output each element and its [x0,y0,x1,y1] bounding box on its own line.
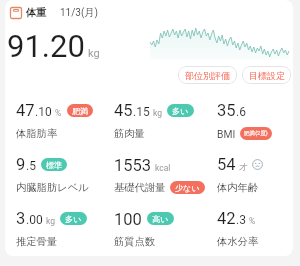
staticText: 筋肉量 [114,127,145,140]
button[interactable]: 47 [16,102,118,140]
staticText: 多い [172,106,189,116]
staticText: kg [46,216,55,226]
staticText: 目標設定 [249,70,285,81]
staticText: kg [88,47,100,60]
staticText: 体重 [26,6,47,19]
staticText: 筋質点数 [114,235,156,248]
staticText: BMI [217,128,236,140]
staticText: % [249,216,256,226]
staticText: kcal [155,163,171,173]
staticText: 肥満(2度) [244,130,268,137]
button[interactable]: 100 [114,210,218,248]
other: Weight scale [10,7,22,19]
staticText: 9 [16,155,26,171]
staticText: .5 [26,159,36,173]
staticText: 47 [16,101,35,117]
staticText: 11/3(月) [60,6,98,19]
staticText: 35 [217,101,236,117]
staticText: 体脂肪率 [16,127,58,140]
button[interactable]: 42 [217,210,293,248]
staticText: 少ない [175,183,200,193]
staticText: 100 [114,210,142,226]
staticText: 基礎代謝量 [114,181,166,194]
staticText: 内臓脂肪レベル [16,181,89,194]
button[interactable]: 45 [114,102,218,140]
staticText: .10 [35,105,52,119]
button[interactable]: 9 [16,156,118,194]
button[interactable]: 1553 [114,156,218,194]
staticText: 54 [217,155,236,171]
staticText: .6 [236,105,246,119]
staticText: 体水分率 [217,235,259,248]
staticText: 45 [114,101,133,117]
button[interactable]: 部位別評価 [178,66,237,84]
staticText: 多い [65,214,82,224]
staticText: 才 [239,162,248,173]
staticText: 肥満 [72,106,88,116]
staticText: 42 [217,209,236,225]
staticText: 部位別評価 [185,70,230,81]
staticText: 標準 [46,160,62,170]
staticText: 1553 [114,156,152,172]
button[interactable]: 54 [217,156,293,194]
staticText: 91.20 [7,28,85,64]
staticText: .15 [133,105,150,119]
staticText: .3 [236,213,246,227]
staticText: .00 [26,213,43,227]
staticText: 3 [16,209,26,225]
button[interactable]: 目標設定 [242,66,291,84]
staticText: 体内年齢 [217,181,259,194]
staticText: 推定骨量 [16,235,58,248]
button[interactable]: 3 [16,210,118,248]
staticText: kg [153,108,162,118]
button[interactable]: 35 [217,102,293,140]
staticText: 高い [152,214,169,224]
staticText: % [55,108,62,118]
